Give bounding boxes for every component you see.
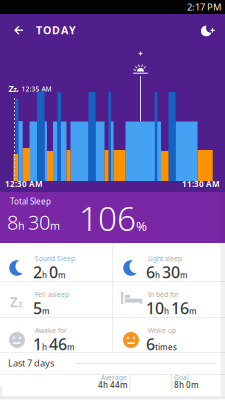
staticText: Woke up xyxy=(148,326,176,335)
staticText: Zz xyxy=(10,293,23,311)
staticText: 106% xyxy=(79,196,147,240)
staticText: 2:17 PM xyxy=(187,1,221,13)
staticText: Average xyxy=(101,373,127,382)
staticText: Total Sleep xyxy=(10,196,51,207)
staticText: 12:30 AM xyxy=(5,179,43,189)
staticText: Zzz xyxy=(8,82,18,95)
staticText: 5m xyxy=(33,297,50,319)
staticText: Sound Sleep xyxy=(35,254,75,263)
staticText: Fell asleep xyxy=(35,290,69,299)
staticText: Last 7 days xyxy=(8,357,54,369)
staticText: T O D A Y xyxy=(36,23,76,37)
staticText: 10h 16m xyxy=(146,297,197,319)
staticText: 12:35 AM xyxy=(21,85,51,93)
staticText: Light sleep xyxy=(148,254,182,263)
staticText: In bed for xyxy=(148,290,179,299)
staticText: 4h 44m xyxy=(98,380,128,390)
staticText: 6times xyxy=(146,333,177,355)
staticText: 11:30 AM xyxy=(182,179,220,189)
staticText: 8h 0m xyxy=(174,380,199,390)
staticText: 8h 30m xyxy=(7,209,60,235)
staticText: 6h 30m xyxy=(146,261,188,283)
staticText: 2h 0m xyxy=(33,261,66,283)
staticText: 1h 46m xyxy=(33,333,75,355)
staticText: Goal xyxy=(174,373,189,382)
staticText: Awake for xyxy=(35,326,67,335)
